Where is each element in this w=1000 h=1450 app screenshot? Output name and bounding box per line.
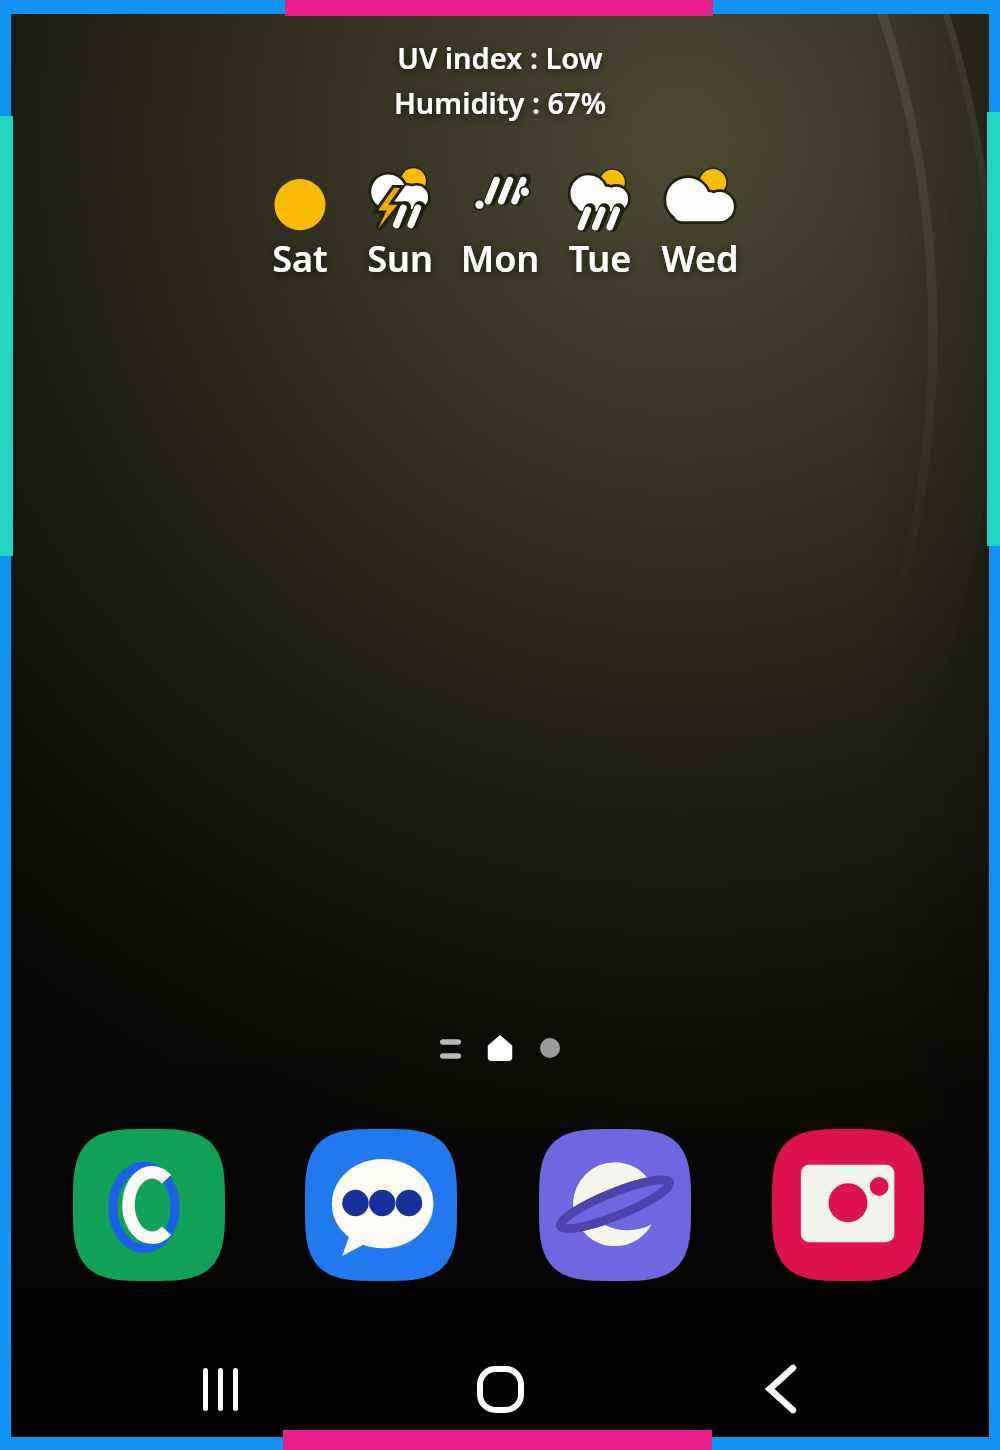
button[interactable]: Phone: [73, 1129, 225, 1281]
button[interactable]: Tue: [550, 162, 650, 282]
staticText: Mon: [450, 234, 550, 282]
button[interactable]: Camera: [772, 1129, 924, 1281]
button[interactable]: Sat: [250, 162, 350, 282]
button[interactable]: Home: [425, 1342, 575, 1436]
button[interactable]: Wed: [650, 162, 750, 282]
button[interactable]: Mon: [450, 162, 550, 282]
button[interactable]: Back: [706, 1342, 856, 1436]
button[interactable]: Sun: [350, 162, 450, 282]
button[interactable]: Home screen: [477, 1025, 523, 1071]
staticText: Sun: [350, 234, 450, 282]
button[interactable]: Internet: [539, 1129, 691, 1281]
staticText: UV index : Low: [300, 38, 700, 78]
staticText: Wed: [650, 234, 750, 282]
staticText: Sat: [250, 234, 350, 282]
staticText: Humidity : 67%: [300, 83, 700, 123]
button[interactable]: Recents: [145, 1342, 295, 1436]
button[interactable]: Page 3: [527, 1025, 573, 1071]
button[interactable]: Apps: [427, 1025, 473, 1071]
staticText: Tue: [550, 234, 650, 282]
button[interactable]: Messages: [305, 1129, 457, 1281]
